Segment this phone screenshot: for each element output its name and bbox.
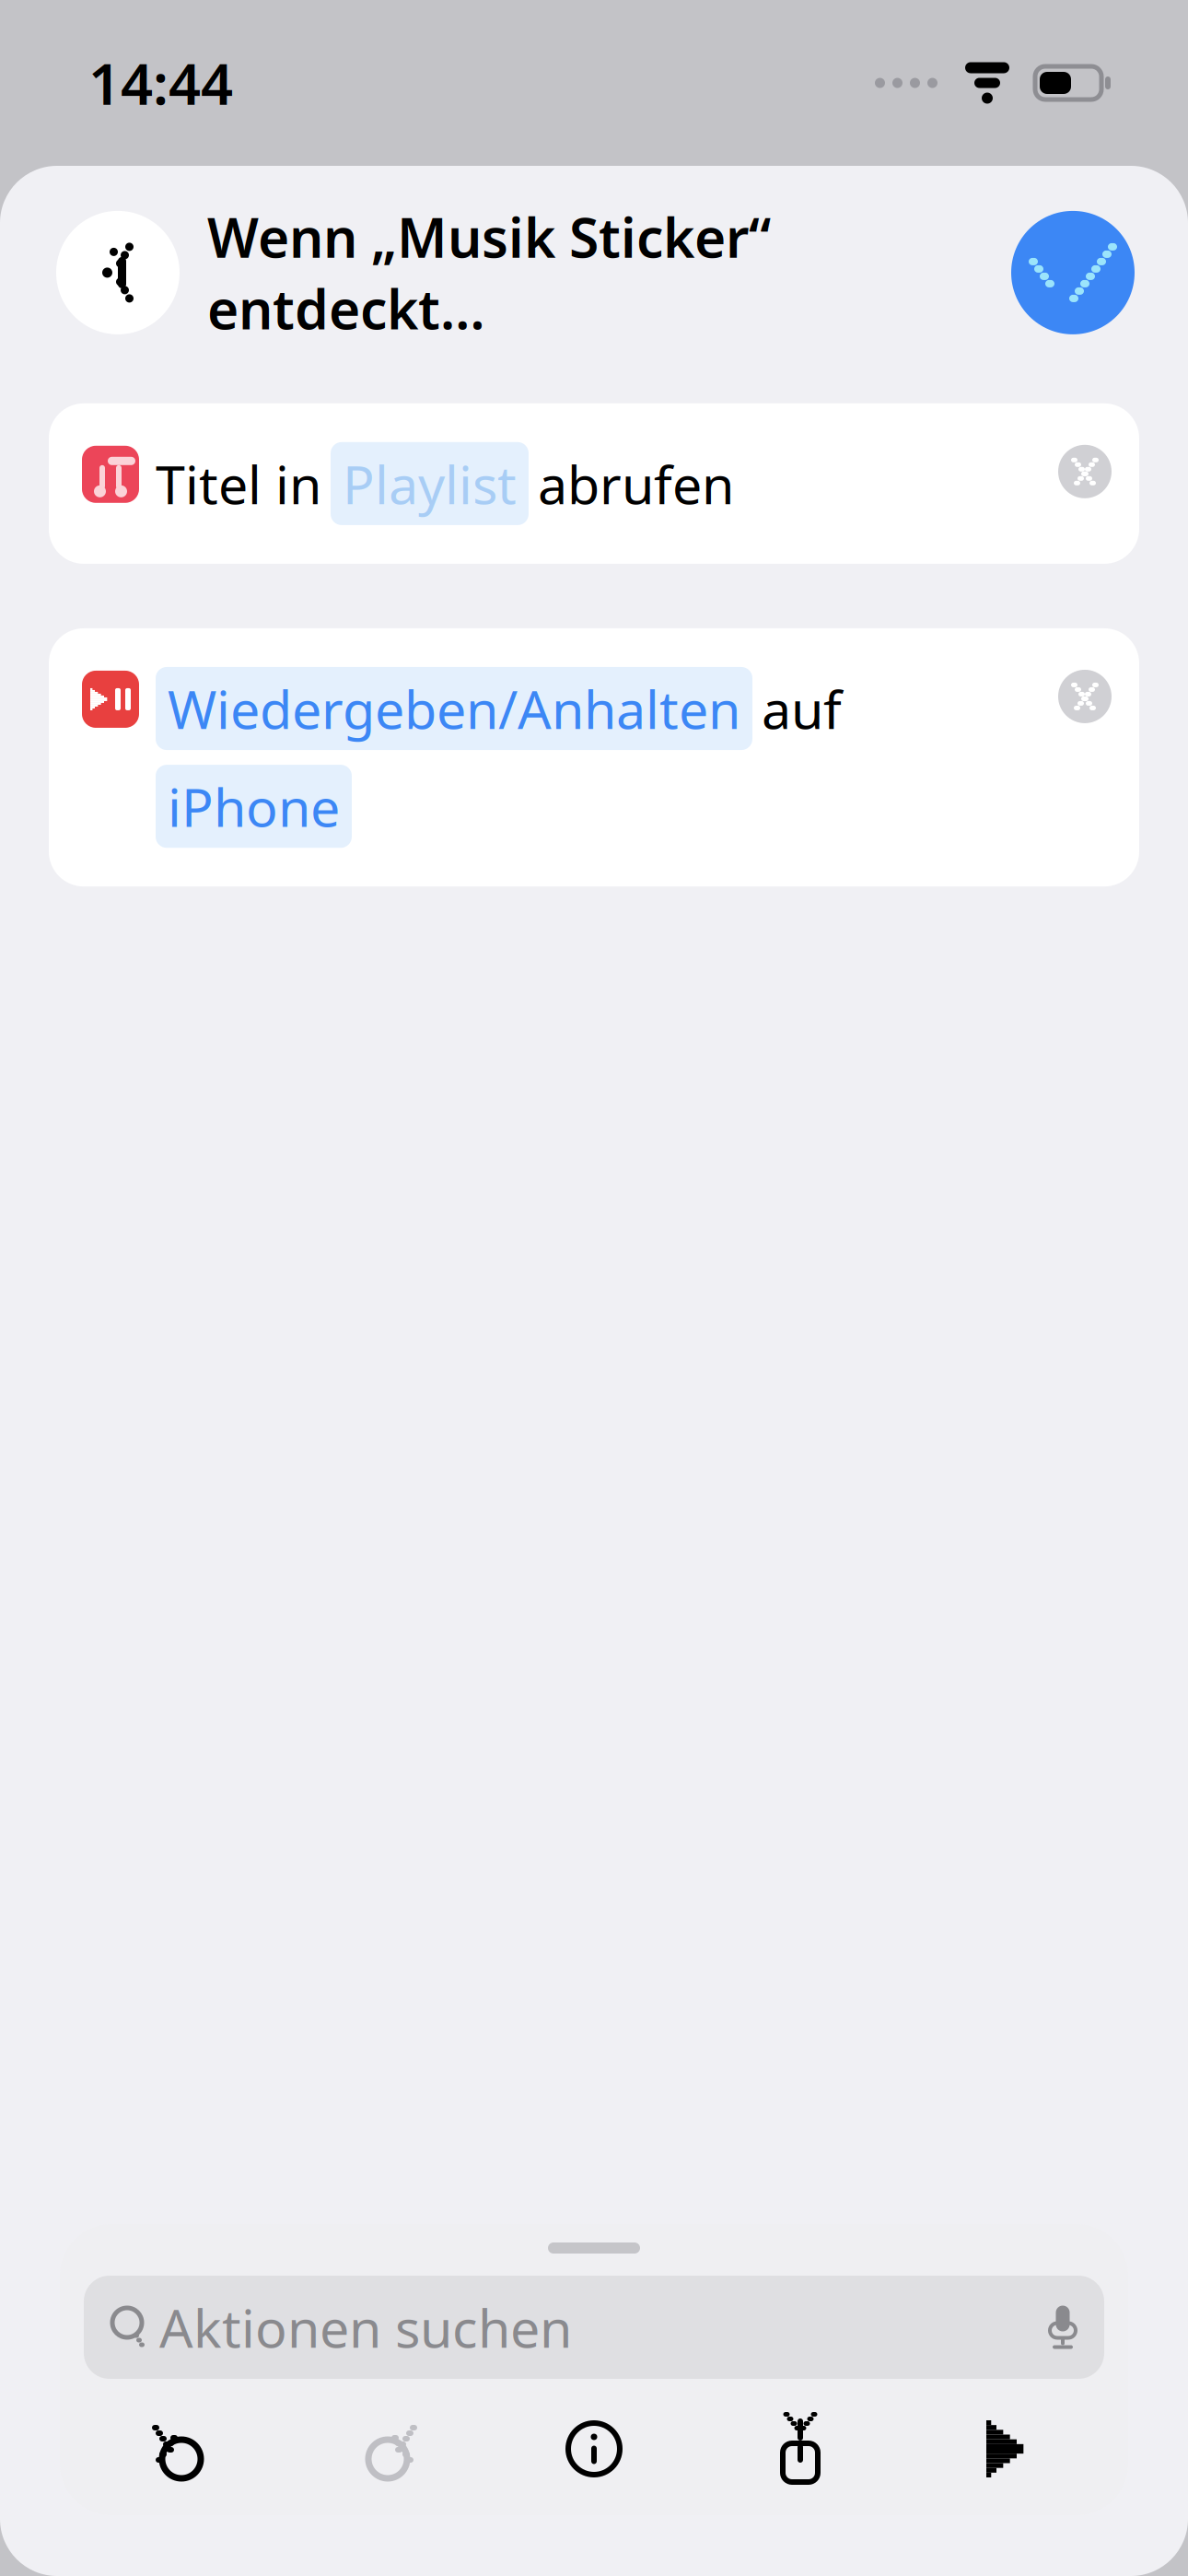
staticText: Titel in [156,448,321,519]
button[interactable]: Widerrufen [152,2418,211,2480]
staticText: Aktionen suchen [159,2292,572,2362]
staticText: abrufen [538,448,734,519]
button[interactable]: Aktion entfernen [1058,445,1112,498]
button[interactable]: Details [565,2418,623,2480]
button[interactable]: Aktion entfernen [1058,670,1112,723]
staticText: Wiedergeben/Anhalten [168,673,740,744]
staticText: Wenn „Musik Sticker“ entdeckt… [207,201,771,344]
button[interactable]: Ausführen [986,2420,1027,2477]
button[interactable]: Teilen [771,2416,830,2482]
button[interactable]: Zurück [56,211,180,334]
staticText: Playlist [343,448,517,519]
button[interactable]: Titel in [49,403,1139,564]
button[interactable]: Wiederholen [358,2418,417,2480]
button[interactable]: Wiedergeben/Anhalten [49,628,1139,887]
button[interactable]: Aktionen suchen [84,2276,1104,2379]
staticText: iPhone [168,771,340,841]
staticText: auf [762,673,842,744]
button[interactable]: Fertig [1011,211,1135,334]
staticText: 14:44 [88,45,233,120]
